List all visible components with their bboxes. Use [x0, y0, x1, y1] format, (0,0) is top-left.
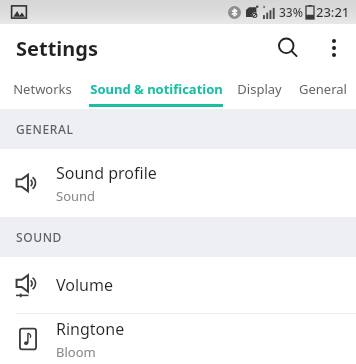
button[interactable]: General — [290, 72, 356, 109]
staticText: General — [299, 80, 347, 98]
staticText: Sound profile — [56, 162, 157, 184]
button[interactable]: Sound profile — [0, 149, 356, 217]
button[interactable]: More options — [312, 26, 356, 70]
staticText: GENERAL — [16, 121, 74, 137]
button[interactable]: Search — [264, 24, 312, 72]
staticText: SOUND — [16, 229, 62, 245]
button[interactable]: Sound & notification — [84, 72, 228, 109]
staticText: Display — [237, 80, 282, 98]
staticText: Ringtone — [56, 318, 125, 340]
staticText: 33% — [279, 4, 303, 20]
staticText: Sound & notification — [90, 80, 223, 98]
staticText: Settings — [16, 35, 98, 62]
staticText: Sound — [56, 187, 96, 205]
staticText: Networks — [13, 80, 72, 98]
staticText: Volume — [56, 274, 113, 296]
staticText: Bloom — [56, 343, 96, 361]
button[interactable]: Volume — [0, 257, 356, 313]
button[interactable]: Networks — [0, 72, 84, 109]
staticText: 23:21 — [316, 3, 350, 21]
button[interactable]: Display — [228, 72, 290, 109]
button[interactable]: Ringtone — [0, 314, 356, 364]
